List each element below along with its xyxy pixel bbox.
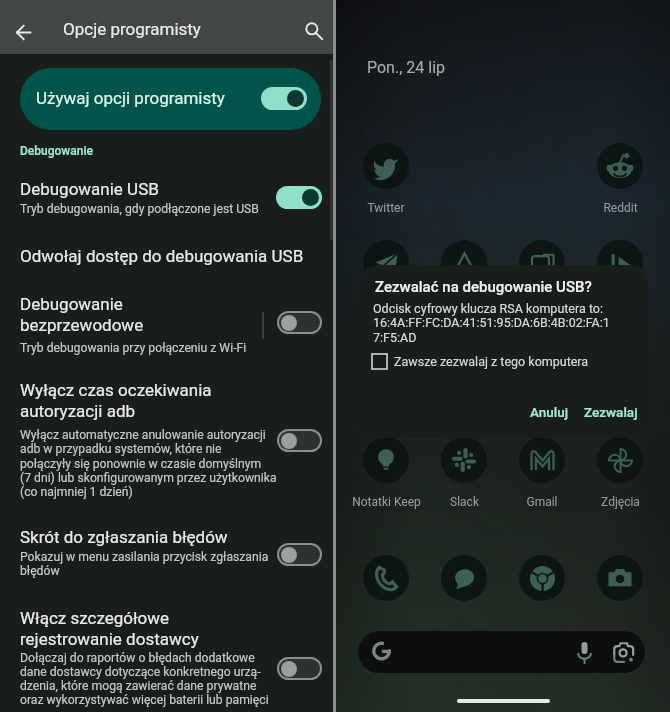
staticText: Notatki Keep xyxy=(352,495,421,509)
button[interactable]: Odwołaj dostęp do debugowania USB xyxy=(20,246,304,266)
button[interactable]: Reddit xyxy=(576,143,664,215)
button[interactable]: App xyxy=(498,555,586,601)
button[interactable]: Back xyxy=(1,10,45,54)
staticText: Opcje programisty xyxy=(63,19,201,39)
staticText: Anuluj xyxy=(530,404,569,420)
button[interactable]: Zezwalaj xyxy=(572,395,648,429)
staticText: Tryb debugowania przy połączeniu z Wi-Fi xyxy=(20,341,247,355)
staticText: Zezwalaj xyxy=(584,404,638,420)
staticText: dzenia, które mogą zawierać dane prywatn… xyxy=(20,679,257,693)
staticText: Zezwalać na debugowanie USB? xyxy=(375,278,592,296)
button[interactable]: App xyxy=(342,240,430,286)
button[interactable]: App xyxy=(576,555,664,601)
button[interactable]: Search xyxy=(292,9,336,53)
staticText: Debugowanie xyxy=(20,144,93,158)
button[interactable]: Zawsze zezwalaj z tego komputera xyxy=(372,354,589,369)
button[interactable]: Notatki Keep xyxy=(342,437,430,509)
button[interactable]: autoryzacji adb xyxy=(20,401,136,421)
button[interactable]: Debugowanie xyxy=(20,294,123,314)
staticText: Pon., 24 lip xyxy=(367,58,446,77)
button[interactable]: Używaj opcji programisty xyxy=(20,68,321,130)
button[interactable] xyxy=(279,313,320,332)
button[interactable] xyxy=(279,659,320,678)
staticText: Używaj opcji programisty xyxy=(36,88,225,108)
button[interactable] xyxy=(261,87,307,110)
button[interactable]: App xyxy=(420,555,508,601)
staticText: błędów xyxy=(20,564,60,578)
staticText: (co najmniej 1 dzień) xyxy=(20,485,133,499)
staticText: Slack xyxy=(450,495,479,509)
staticText: adb w przypadku systemów, które nie xyxy=(20,442,222,456)
staticText: Odcisk cyfrowy klucza RSA komputera to: xyxy=(373,301,604,316)
staticText: (7 dni) lub skonfigurowanym przez użytko… xyxy=(20,471,277,485)
button[interactable]: Zdjęcia xyxy=(576,437,664,509)
staticText: Gmail xyxy=(526,495,558,509)
staticText: 7:F5:AD xyxy=(373,330,417,345)
button[interactable]: Slack xyxy=(420,437,508,509)
button[interactable]: Debugowanie USB xyxy=(20,179,159,199)
staticText: Wyłącz automatyczne anulowanie autoryzac… xyxy=(20,428,266,442)
button[interactable]: App xyxy=(342,555,430,601)
button[interactable]: Gmail xyxy=(498,437,586,509)
staticText: Dołączaj do raportów o błędach dodatkowe xyxy=(20,651,255,665)
button[interactable]: Włącz szczegółowe xyxy=(20,608,170,628)
staticText: Zdjęcia xyxy=(601,495,640,509)
staticText: Reddit xyxy=(603,201,638,215)
button[interactable]: App xyxy=(420,240,508,286)
button[interactable]: Wyłącz czas oczekiwania xyxy=(20,380,212,400)
staticText: dane dostawcy dotyczące konkretnego urzą… xyxy=(20,665,261,679)
button[interactable]: App xyxy=(576,240,664,286)
button[interactable] xyxy=(276,186,322,209)
button[interactable]: Skrót do zgłaszania błędów xyxy=(20,527,228,547)
staticText: oraz wykorzystywać więcej baterii lub pa… xyxy=(20,693,269,707)
button[interactable]: Twitter xyxy=(342,143,430,215)
staticText: Pokazuj w menu zasilania przycisk zgłasz… xyxy=(20,550,269,564)
button[interactable]: Anuluj xyxy=(518,395,581,429)
button[interactable] xyxy=(279,545,320,564)
staticText: 16:4A:FF:FC:DA:41:51:95:DA:6B:4B:02:FA:1 xyxy=(373,315,610,330)
button[interactable]: Google search xyxy=(358,631,645,673)
staticText: Zawsze zezwalaj z tego komputera xyxy=(394,354,589,369)
button[interactable]: bezprzewodowe xyxy=(20,315,144,335)
staticText: połączyły się ponownie w czasie domyślny… xyxy=(20,457,262,471)
button[interactable] xyxy=(279,431,320,450)
button[interactable]: App xyxy=(498,240,586,286)
staticText: Tryb debugowania, gdy podłączone jest US… xyxy=(20,202,259,216)
button[interactable]: rejestrowanie dostawcy xyxy=(20,629,199,649)
staticText: Twitter xyxy=(367,201,405,215)
